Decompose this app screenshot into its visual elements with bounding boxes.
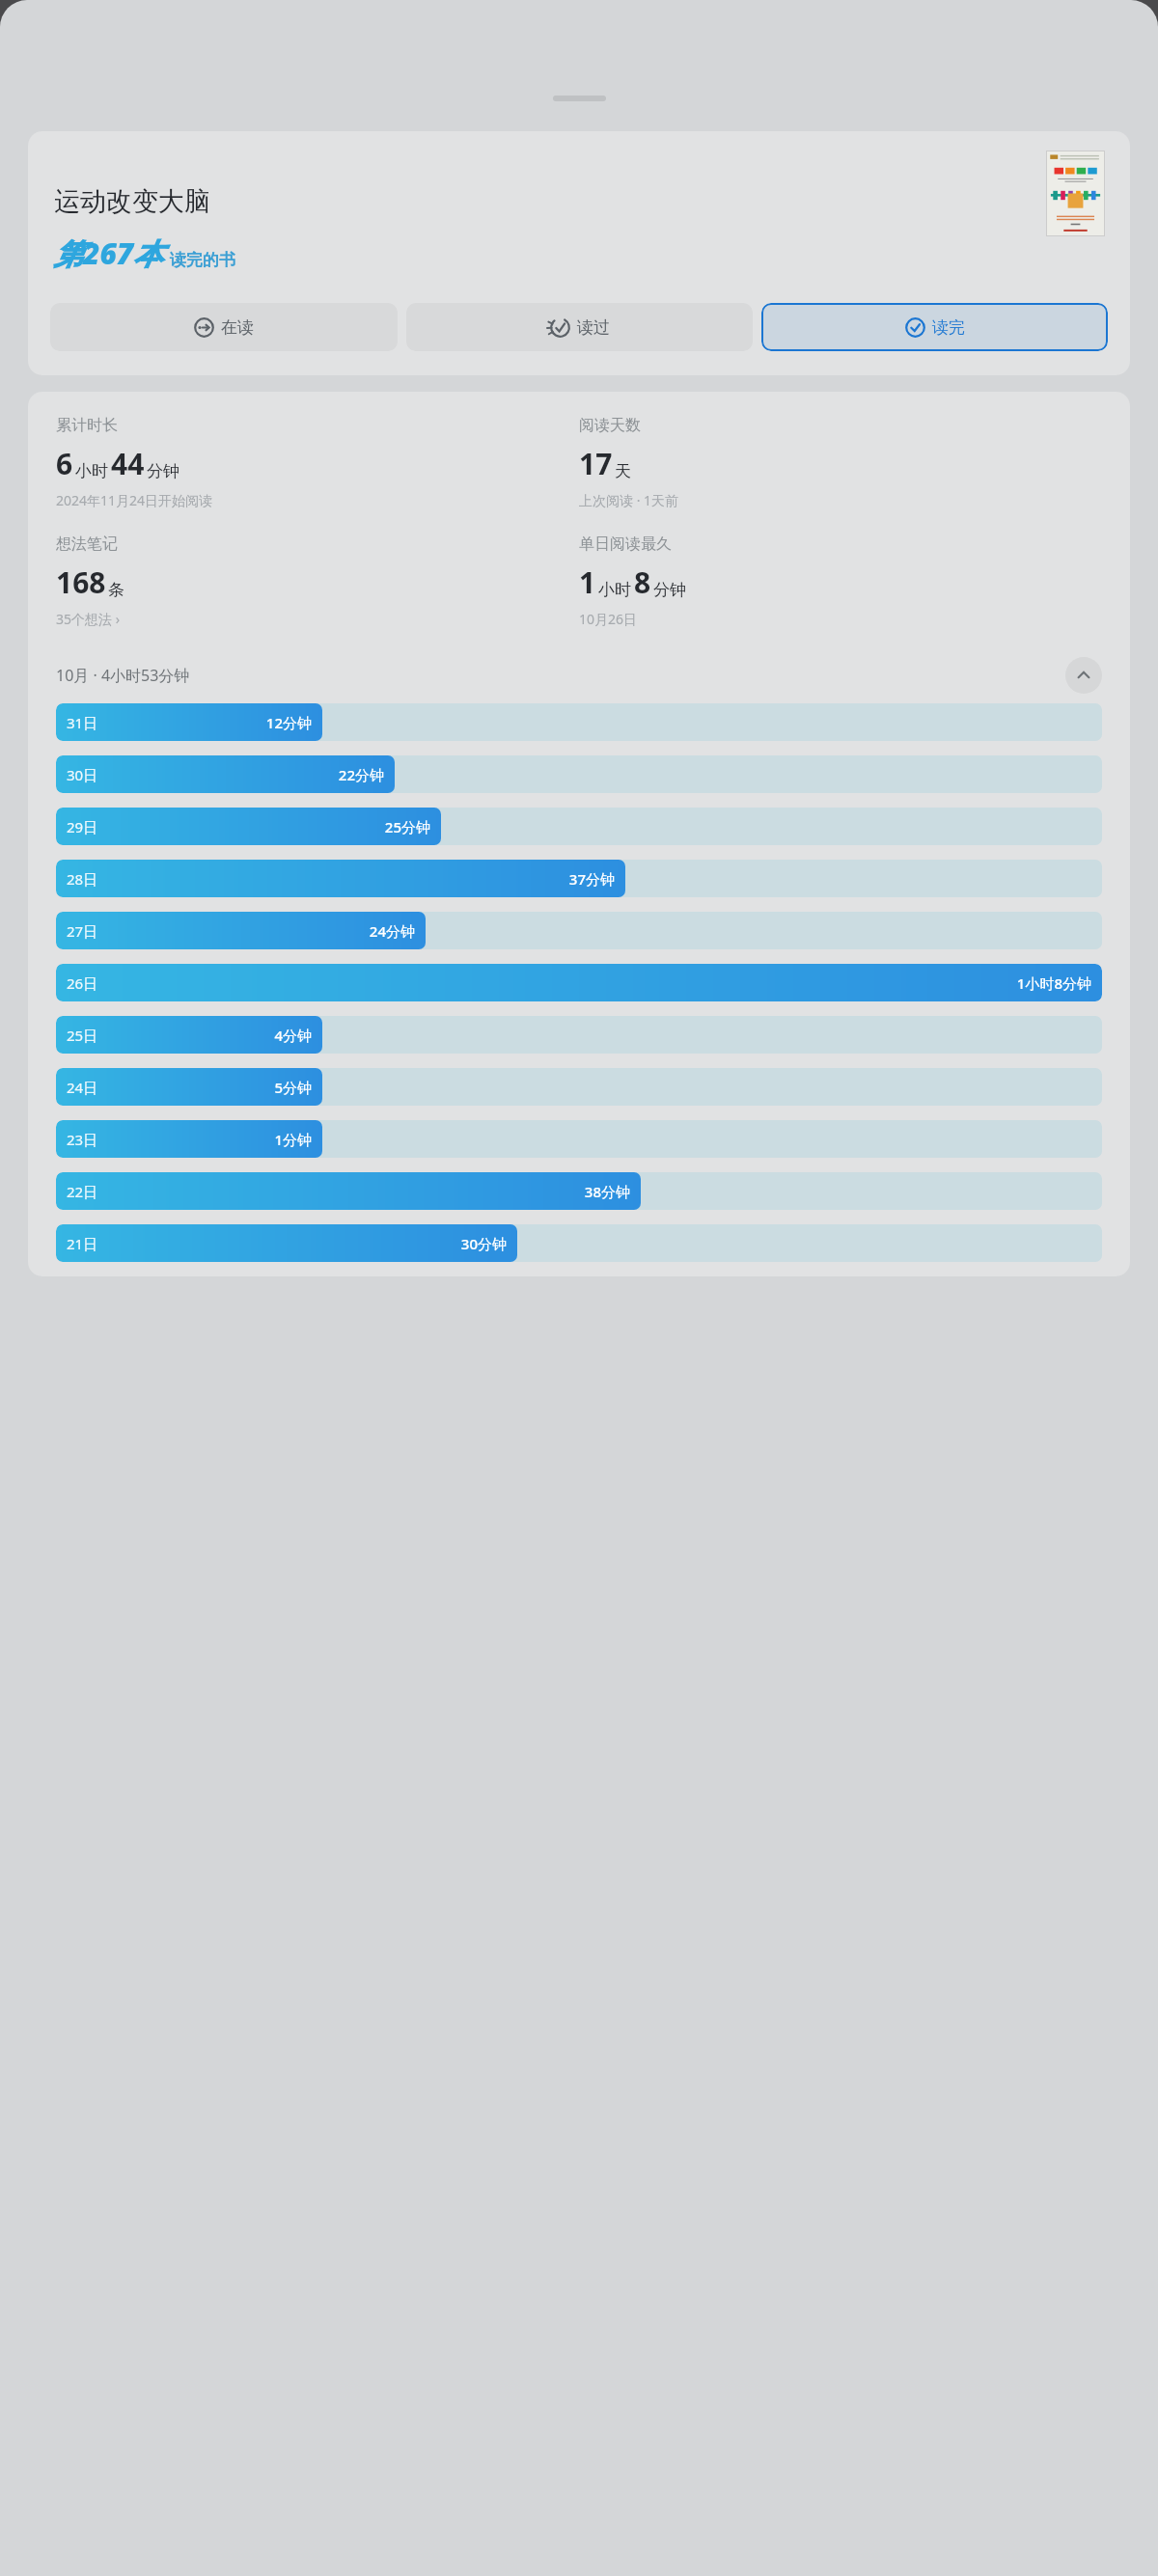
- staticText: 10月26日: [579, 610, 638, 628]
- staticText: 4分钟: [274, 1026, 312, 1045]
- button[interactable]: 29日: [56, 808, 1102, 845]
- staticText: 阅读天数: [579, 416, 641, 435]
- staticText: 28日: [67, 869, 98, 889]
- staticText: 5分钟: [274, 1078, 312, 1097]
- button[interactable]: 25日: [56, 1016, 1102, 1054]
- staticText: 小时: [75, 461, 108, 481]
- staticText: 条: [108, 580, 124, 600]
- staticText: 168: [56, 562, 106, 602]
- button[interactable]: 30日: [56, 755, 1102, 793]
- staticText: 22分钟: [338, 765, 384, 784]
- staticText: 6: [56, 444, 73, 483]
- button[interactable]: 27日: [56, 912, 1102, 949]
- staticText: 24分钟: [369, 921, 415, 941]
- staticText: 想法笔记: [56, 534, 118, 554]
- staticText: 天: [615, 461, 631, 481]
- button[interactable]: 读完: [761, 303, 1108, 351]
- button[interactable]: 10月 · 4小时53分钟: [56, 657, 1102, 694]
- staticText: 29日: [67, 817, 98, 836]
- button[interactable]: 31日: [56, 703, 1102, 741]
- staticText: 分钟: [653, 580, 686, 600]
- button[interactable]: 23日: [56, 1120, 1102, 1158]
- other: Collapse: [1065, 657, 1102, 694]
- staticText: 27日: [67, 921, 98, 941]
- staticText: 读过: [577, 317, 610, 338]
- staticText: 累计时长: [56, 416, 118, 435]
- staticText: 44: [111, 444, 145, 483]
- button[interactable]: 28日: [56, 860, 1102, 897]
- button[interactable]: 读过: [406, 303, 753, 351]
- staticText: 第267本: [54, 233, 163, 273]
- staticText: 8: [634, 562, 651, 602]
- staticText: 30日: [67, 765, 98, 784]
- button[interactable]: 21日: [56, 1224, 1102, 1262]
- staticText: 2024年11月24日开始阅读: [56, 491, 213, 509]
- staticText: 分钟: [147, 461, 179, 481]
- staticText: 37分钟: [568, 869, 615, 889]
- button[interactable]: 22日: [56, 1172, 1102, 1210]
- staticText: 单日阅读最久: [579, 534, 672, 554]
- staticText: 上次阅读 · 1天前: [579, 491, 679, 509]
- staticText: 22日: [67, 1182, 98, 1201]
- staticText: 运动改变大脑: [54, 185, 210, 218]
- button[interactable]: 35个想法 ›: [56, 610, 120, 628]
- button[interactable]: 24日: [56, 1068, 1102, 1106]
- staticText: 10月 · 4小时53分钟: [56, 665, 190, 686]
- staticText: 30分钟: [460, 1234, 507, 1253]
- staticText: 在读: [221, 317, 254, 338]
- staticText: 23日: [67, 1130, 98, 1149]
- staticText: 读完的书: [170, 250, 235, 270]
- staticText: 38分钟: [584, 1182, 630, 1201]
- staticText: 读完: [932, 317, 965, 338]
- staticText: 小时: [598, 580, 631, 600]
- button[interactable]: 在读: [50, 303, 398, 351]
- staticText: 1分钟: [274, 1130, 312, 1149]
- staticText: 25日: [67, 1026, 98, 1045]
- staticText: 21日: [67, 1234, 98, 1253]
- staticText: 25分钟: [384, 817, 430, 836]
- staticText: 1: [579, 562, 596, 602]
- staticText: 24日: [67, 1078, 98, 1097]
- staticText: 31日: [67, 713, 98, 732]
- staticText: 17: [579, 444, 613, 483]
- staticText: 12分钟: [265, 713, 312, 732]
- staticText: 1小时8分钟: [1016, 973, 1091, 993]
- button[interactable]: 26日: [56, 964, 1102, 1001]
- staticText: 26日: [67, 973, 98, 993]
